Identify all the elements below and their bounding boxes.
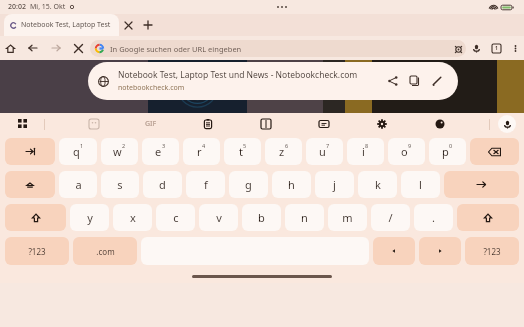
button[interactable]: m [328,204,367,231]
staticText: k [375,177,381,192]
button[interactable]: shift [457,204,519,231]
staticText: 20:02 [8,2,26,12]
button[interactable]: Vorwärts [44,36,67,60]
button[interactable]: right [419,237,461,265]
button[interactable]: left [373,237,415,265]
button[interactable]: e [142,138,179,165]
button[interactable]: Tastaturoptionen [14,115,32,133]
button[interactable]: x [113,204,152,231]
button[interactable]: Startseite [0,36,21,60]
staticText: s [117,177,123,192]
button[interactable]: Sticker [85,115,103,133]
button[interactable]: Mehr Optionen [506,36,524,60]
button[interactable]: .com [73,237,137,265]
button[interactable]: / [371,204,410,231]
staticText: m [342,210,353,225]
button[interactable]: z [265,138,302,165]
staticText: / [388,210,393,225]
staticText: GIF [145,119,157,129]
button[interactable]: Notebook Test, Laptop Test und News - No… [88,62,458,100]
button[interactable]: j [315,171,354,198]
button[interactable]: shift [5,204,66,231]
button[interactable]: del [470,138,519,165]
staticText: 6 [285,142,289,149]
staticText: d [159,177,166,192]
button[interactable]: Texterkennung [315,115,333,133]
staticText: g [245,177,252,192]
button[interactable]: Design [431,115,449,133]
button[interactable]: Neuer Tab [137,14,159,36]
button[interactable]: tab [5,138,55,165]
button[interactable]: Google Lens [450,41,466,57]
button[interactable]: caps [5,171,55,198]
staticText: h [288,177,295,192]
button[interactable]: Bearbeiten [426,70,448,92]
staticText: . [432,210,435,225]
button[interactable]: ?123 [5,237,69,265]
button[interactable]: t [224,138,261,165]
button[interactable]: a [59,171,97,198]
button[interactable]: In Google suchen oder URL eingeben [90,40,466,57]
button[interactable]: p [429,138,466,165]
staticText: j [333,177,336,192]
button[interactable]: k [358,171,397,198]
button[interactable]: h [272,171,311,198]
staticText: u [319,144,326,159]
staticText: 3 [162,142,166,149]
staticText: t [239,144,243,159]
staticText: ?123 [483,246,501,257]
button[interactable]: q [59,138,97,165]
button[interactable]: Kopieren [404,70,426,92]
button[interactable]: r [183,138,220,165]
button[interactable]: l [401,171,440,198]
staticText: i [362,144,365,159]
staticText: notebookcheck.com [118,83,185,93]
button[interactable]: Tab schließen [119,14,137,36]
staticText: w [113,144,122,159]
button[interactable]: ?123 [465,237,519,265]
button[interactable]: c [156,204,195,231]
staticText: 1 [80,142,84,149]
staticText: a [75,177,82,192]
staticText: .com [96,246,115,257]
staticText: f [204,177,208,192]
button[interactable]: Einstellungen [373,115,391,133]
button[interactable]: Spracheingabe [498,115,516,133]
button[interactable]: y [70,204,109,231]
button[interactable]: . [414,204,453,231]
button[interactable]: Sprachsuche [466,36,486,60]
button[interactable]: w [101,138,138,165]
button[interactable]: u [306,138,343,165]
staticText: 0 [449,142,453,149]
button[interactable]: Zwischenablage [199,115,217,133]
button[interactable]: i [347,138,384,165]
staticText: p [442,144,449,159]
button[interactable]: Tabs [486,36,506,60]
staticText: ?123 [28,246,46,257]
staticText: b [258,210,265,225]
button[interactable]: n [285,204,324,231]
button[interactable]: Zurück [21,36,44,60]
button[interactable]: g [229,171,268,198]
button[interactable]: f [186,171,225,198]
button[interactable]: d [143,171,182,198]
button[interactable]: s [101,171,139,198]
staticText: e [155,144,162,159]
staticText: 8 [365,142,369,149]
staticText: 4 [202,142,206,149]
button[interactable]: enter [444,171,519,198]
button[interactable]: v [199,204,238,231]
button[interactable]: GIF [143,117,159,131]
button[interactable]: Teilen [382,70,404,92]
staticText: 5 [243,142,247,149]
staticText: c [173,210,179,225]
button[interactable]: Stopp [67,36,90,60]
staticText: Mi, 15. Okt [30,2,66,12]
staticText: In Google suchen oder URL eingeben [110,44,242,54]
button[interactable]: Übersetzen [257,115,275,133]
button[interactable]: Notebook Test, Laptop Test [4,14,119,36]
button[interactable]: o [388,138,425,165]
button[interactable]: b [242,204,281,231]
staticText: v [216,210,222,225]
